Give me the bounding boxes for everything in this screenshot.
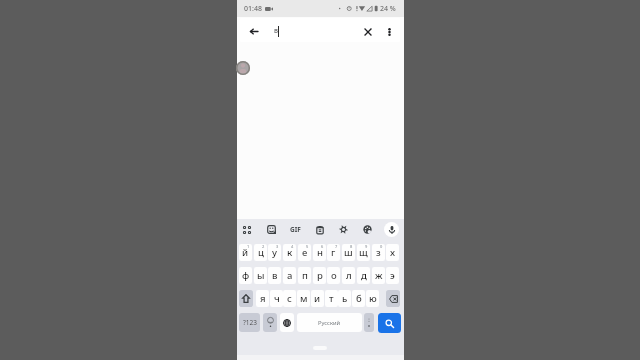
button[interactable]: м (297, 290, 310, 307)
button[interactable]: в (268, 267, 281, 284)
staticText: г (331, 246, 336, 259)
button[interactable]: у (268, 244, 281, 261)
button[interactable]: д (357, 267, 370, 284)
staticText: л (346, 269, 352, 282)
button[interactable]: э (386, 267, 399, 284)
button[interactable]: к (283, 244, 296, 261)
staticText: ы (257, 269, 265, 282)
button[interactable]: Change keyboard language (280, 313, 294, 332)
staticText: ч (274, 292, 280, 305)
staticText: ж (375, 269, 383, 282)
button[interactable]: с (283, 290, 296, 307)
button[interactable]: Search (378, 313, 401, 333)
button[interactable]: ц (254, 244, 267, 261)
button[interactable]: л (342, 267, 355, 284)
staticText: т (329, 292, 334, 305)
staticText: ь (342, 292, 348, 305)
staticText: ю (369, 292, 377, 305)
button[interactable]: щ (357, 244, 370, 261)
staticText: д (361, 269, 367, 282)
button[interactable]: GIF (288, 222, 303, 237)
button[interactable]: б (352, 290, 365, 307)
button[interactable]: Settings (336, 222, 351, 237)
staticText: у (272, 246, 278, 259)
button[interactable]: т (325, 290, 338, 307)
staticText: 4 (291, 244, 294, 249)
button[interactable]: ь (338, 290, 351, 307)
staticText: 24 % (380, 4, 396, 14)
staticText: 6 (321, 244, 324, 249)
staticText: п (302, 269, 308, 282)
staticText: 5 (306, 244, 309, 249)
staticText: в (272, 269, 278, 282)
staticText: х (390, 246, 396, 259)
staticText: а (287, 269, 293, 282)
button[interactable]: Themes (360, 222, 375, 237)
staticText: с (287, 292, 292, 305)
button[interactable]: а (283, 267, 296, 284)
staticText: 7 (335, 244, 338, 249)
button[interactable]: ж (372, 267, 385, 284)
button[interactable]: г (327, 244, 340, 261)
button[interactable]: Backspace (386, 290, 400, 307)
staticText: ?123 (243, 318, 257, 327)
staticText: 01:48 (244, 4, 262, 14)
button[interactable]: Back (245, 22, 263, 40)
staticText: щ (359, 246, 368, 259)
button[interactable]: More options (380, 23, 398, 41)
staticText: 0 (380, 244, 383, 249)
button[interactable]: е (298, 244, 311, 261)
staticText: в (274, 26, 278, 36)
staticText: Русский (318, 319, 341, 327)
button[interactable]: ч (270, 290, 283, 307)
staticText: ц (258, 246, 264, 259)
staticText: е (302, 246, 308, 259)
button[interactable]: Contact avatar (236, 61, 250, 75)
staticText: 3 (276, 244, 279, 249)
staticText: 9 (365, 244, 368, 249)
staticText: и (314, 292, 321, 305)
staticText: ф (242, 269, 250, 282)
staticText: ш (344, 246, 353, 259)
button[interactable]: ф (239, 267, 252, 284)
button[interactable]: п (298, 267, 311, 284)
staticText: й (242, 246, 249, 259)
staticText: о (331, 269, 337, 282)
button[interactable]: з (372, 244, 385, 261)
button[interactable]: Shift (239, 290, 253, 307)
button[interactable]: ю (366, 290, 379, 307)
button[interactable]: ш (342, 244, 355, 261)
button[interactable]: х (386, 244, 399, 261)
button[interactable]: я (256, 290, 269, 307)
staticText: 8 (350, 244, 353, 249)
button[interactable]: й (239, 244, 252, 261)
staticText: GIF (290, 225, 301, 234)
staticText: 2 (262, 244, 265, 249)
button[interactable]: Voice input (384, 222, 399, 237)
staticText: з (376, 246, 381, 259)
button[interactable]: и (311, 290, 324, 307)
staticText: р (317, 269, 323, 282)
button[interactable]: Emoji (263, 313, 277, 332)
button[interactable]: н (313, 244, 326, 261)
button[interactable]: Clipboard (312, 222, 327, 237)
staticText: к (287, 246, 293, 259)
staticText: н (317, 246, 323, 259)
button[interactable]: р (313, 267, 326, 284)
button[interactable]: Apps (239, 222, 254, 237)
button[interactable]: Stickers (264, 222, 279, 237)
button[interactable] (364, 313, 374, 332)
staticText: б (356, 292, 362, 305)
button[interactable]: о (327, 267, 340, 284)
staticText: 1 (247, 244, 250, 249)
button[interactable]: ы (254, 267, 267, 284)
button[interactable]: ?123 (239, 313, 260, 332)
button[interactable]: Русский (297, 313, 362, 332)
staticText: я (260, 292, 266, 305)
button[interactable]: Clear query (359, 23, 377, 41)
staticText: э (390, 269, 395, 282)
staticText: м (300, 292, 308, 305)
